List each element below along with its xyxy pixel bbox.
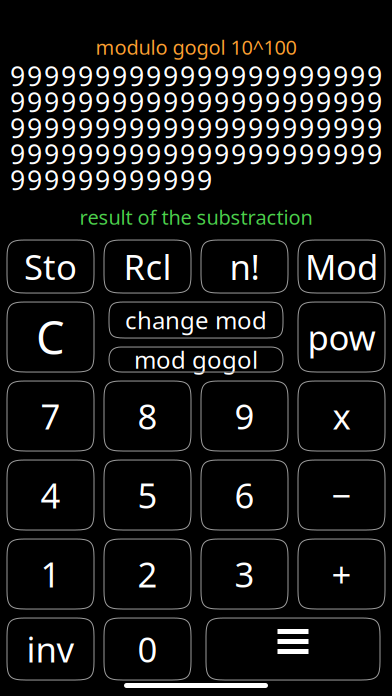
button[interactable]: 2 <box>104 539 191 609</box>
button[interactable]: 1 <box>7 539 94 609</box>
staticText: change mod <box>125 304 267 336</box>
staticText: 9999999999999999999999 <box>10 58 382 94</box>
staticText: 999999999999 <box>10 162 212 198</box>
staticText: Mod <box>305 243 378 289</box>
button[interactable]: 7 <box>7 381 94 451</box>
staticText: x <box>332 393 350 439</box>
staticText: 2 <box>137 551 157 597</box>
button[interactable]: change mod <box>109 302 283 338</box>
staticText: − <box>331 472 351 518</box>
staticText: modulo gogol 10^100 <box>95 34 296 60</box>
button[interactable]: 4 <box>7 460 94 530</box>
staticText: 7 <box>40 393 60 439</box>
button[interactable]: 3 <box>201 539 288 609</box>
staticText: result of the substraction <box>79 204 312 230</box>
staticText: pow <box>307 314 375 360</box>
button[interactable]: Mod <box>298 240 385 293</box>
staticText: + <box>331 551 351 597</box>
button[interactable]: + <box>298 539 385 609</box>
button[interactable]: x <box>298 381 385 451</box>
button[interactable]: n! <box>201 240 288 293</box>
button[interactable]: 6 <box>201 460 288 530</box>
staticText: Sto <box>24 243 77 289</box>
button[interactable]: 5 <box>104 460 191 530</box>
button[interactable]: Menu <box>206 618 380 680</box>
button[interactable]: − <box>298 460 385 530</box>
staticText: Rcl <box>123 243 171 289</box>
button[interactable]: 8 <box>104 381 191 451</box>
button[interactable]: inv <box>7 618 94 680</box>
button[interactable]: pow <box>298 302 385 372</box>
staticText: 1 <box>40 551 60 597</box>
staticText: 3 <box>234 551 254 597</box>
button[interactable]: 0 <box>104 618 191 680</box>
staticText: 8 <box>137 393 157 439</box>
button[interactable]: Sto <box>7 240 94 293</box>
staticText: C <box>36 307 65 367</box>
button[interactable]: 9 <box>201 381 288 451</box>
button[interactable]: mod gogol <box>109 347 283 372</box>
staticText: 4 <box>40 472 60 518</box>
staticText: 9999999999999999999999 <box>10 136 382 172</box>
staticText: 6 <box>234 472 254 518</box>
staticText: inv <box>26 626 74 672</box>
staticText: mod gogol <box>134 344 258 375</box>
staticText: 5 <box>137 472 157 518</box>
staticText: 9 <box>234 393 254 439</box>
staticText: 9999999999999999999999 <box>10 110 382 146</box>
staticText: 0 <box>137 626 157 672</box>
staticText: 9999999999999999999999 <box>10 84 382 120</box>
staticText: n! <box>229 243 259 289</box>
button[interactable]: C <box>7 302 94 372</box>
button[interactable]: Rcl <box>104 240 191 293</box>
